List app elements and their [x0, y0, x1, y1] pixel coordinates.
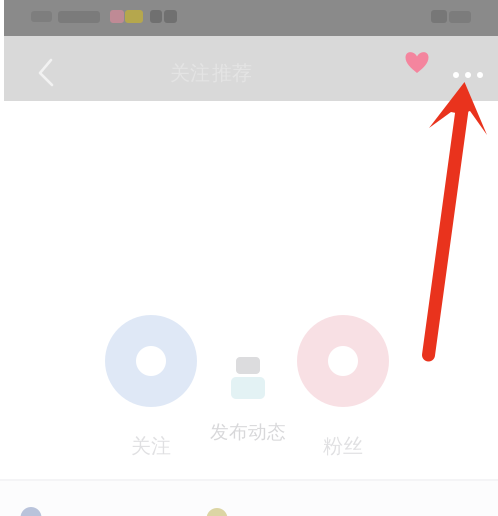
staticText: 发布动态	[210, 420, 286, 443]
button[interactable]: Moments tab	[186, 508, 248, 516]
button[interactable]: 发布动态	[200, 357, 296, 441]
staticText: 关注	[170, 61, 210, 85]
staticText: 关注	[131, 434, 171, 458]
button[interactable]: 粉丝	[287, 313, 399, 456]
button[interactable]: Back	[20, 47, 64, 99]
button[interactable]: 关注	[95, 313, 207, 456]
button[interactable]: Home tab	[0, 507, 62, 516]
button[interactable]: More options	[442, 55, 494, 95]
button[interactable]: Likes	[402, 45, 432, 75]
staticText: 粉丝	[323, 434, 363, 458]
staticText: 推荐	[212, 61, 252, 85]
